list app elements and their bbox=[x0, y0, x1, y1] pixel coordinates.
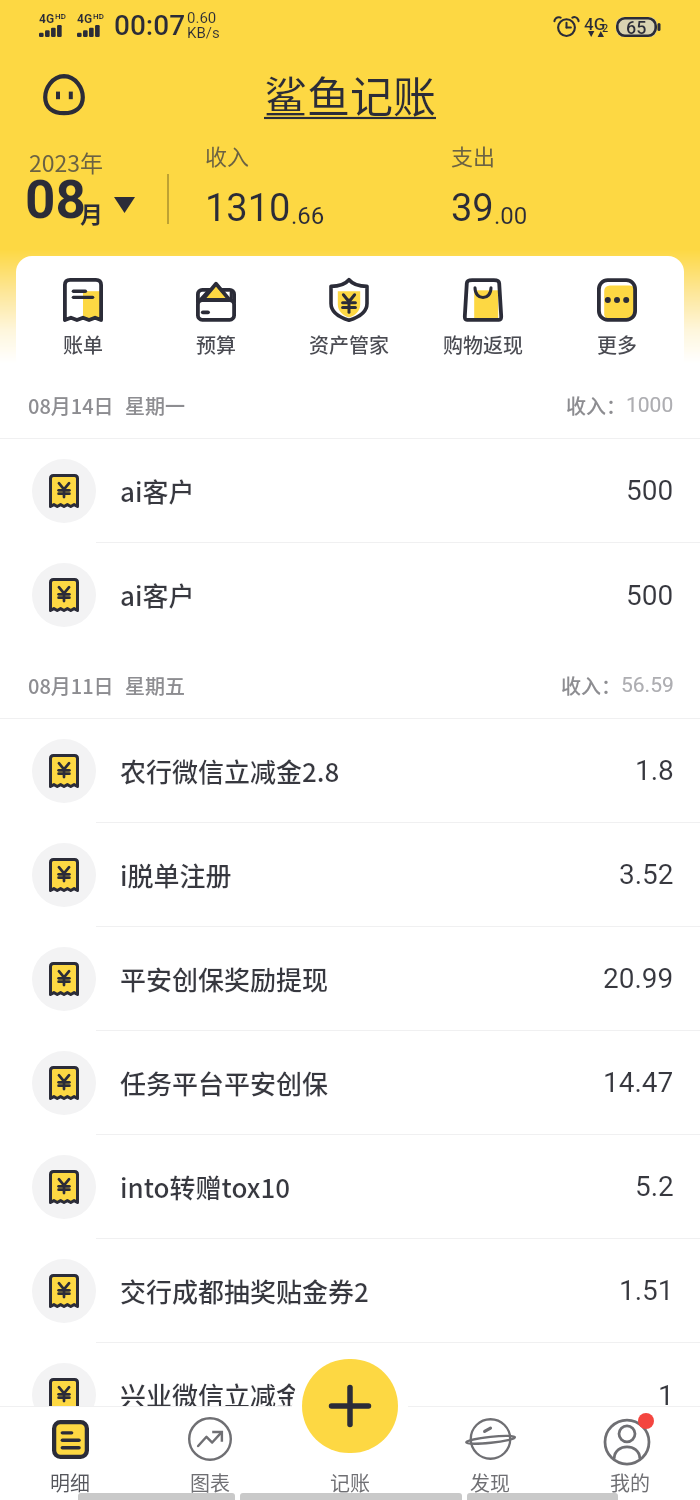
staticText: 08月11日 bbox=[28, 671, 114, 700]
staticText: 39 bbox=[451, 186, 494, 231]
staticText: 08 bbox=[25, 169, 86, 231]
staticText: .66 bbox=[291, 202, 325, 230]
staticText: 56.59 bbox=[621, 673, 674, 698]
staticText: 鲨鱼记账 bbox=[264, 63, 436, 125]
staticText: 星期一 bbox=[125, 391, 185, 420]
button[interactable]: 账单 bbox=[16, 256, 149, 374]
staticText: i脱单注册 bbox=[120, 856, 232, 894]
staticText: 4G bbox=[584, 14, 606, 34]
button[interactable]: 兴业微信立减金 bbox=[0, 1343, 700, 1447]
button[interactable]: 购物返现 bbox=[416, 256, 550, 374]
staticText: 1.8 bbox=[635, 754, 674, 787]
button[interactable]: 发现 bbox=[420, 1406, 560, 1500]
staticText: HD bbox=[93, 12, 104, 21]
staticText: 08月14日 bbox=[28, 391, 114, 420]
button[interactable]: 预算 bbox=[149, 256, 282, 374]
staticText: 图表 bbox=[190, 1468, 230, 1497]
staticText: 4G bbox=[39, 12, 55, 26]
staticText: 兴业微信立减金 bbox=[120, 1376, 303, 1414]
staticText: 发现 bbox=[470, 1468, 510, 1497]
staticText: 收入： bbox=[561, 671, 621, 700]
staticText: 明细 bbox=[50, 1468, 90, 1497]
staticText: 交行成都抽奖贴金券2 bbox=[120, 1272, 369, 1310]
staticText: .00 bbox=[494, 202, 528, 230]
staticText: into转赠tox10 bbox=[120, 1168, 291, 1206]
staticText: 收入 bbox=[205, 139, 250, 171]
staticText: 我的 bbox=[610, 1468, 650, 1497]
staticText: 月 bbox=[80, 196, 103, 229]
button[interactable]: 平安创保奖励提现 bbox=[0, 927, 700, 1031]
button[interactable]: 图表 bbox=[140, 1406, 280, 1500]
staticText: 1310 bbox=[205, 186, 291, 231]
button[interactable]: 记账 bbox=[280, 1406, 420, 1500]
button[interactable]: 明细 bbox=[0, 1406, 140, 1500]
staticText: 星期五 bbox=[125, 671, 185, 700]
button[interactable]: 2023年 bbox=[24, 140, 148, 224]
button[interactable]: 我的 bbox=[560, 1406, 700, 1500]
button[interactable]: Profile bbox=[44, 74, 84, 114]
button[interactable]: 更多 bbox=[550, 256, 684, 374]
staticText: 2023年 bbox=[29, 145, 104, 178]
staticText: ai客户 bbox=[120, 576, 195, 614]
staticText: 1.51 bbox=[619, 1274, 674, 1307]
button[interactable]: 资产管家 bbox=[282, 256, 416, 374]
staticText: 14.47 bbox=[603, 1066, 674, 1099]
staticText: 收入： bbox=[566, 391, 626, 420]
staticText: 500 bbox=[626, 579, 674, 612]
staticText: 预算 bbox=[196, 330, 236, 359]
staticText: 0.60 bbox=[187, 9, 217, 27]
button[interactable]: 任务平台平安创保 bbox=[0, 1031, 700, 1135]
staticText: 2 bbox=[602, 22, 609, 35]
staticText: 记账 bbox=[330, 1468, 370, 1497]
staticText: 购物返现 bbox=[443, 330, 523, 359]
button[interactable]: 交行成都抽奖贴金券2 bbox=[0, 1239, 700, 1343]
staticText: 1000 bbox=[626, 393, 674, 418]
staticText: 任务平台平安创保 bbox=[120, 1064, 329, 1102]
staticText: 资产管家 bbox=[309, 330, 389, 359]
button[interactable]: 农行微信立减金2.8 bbox=[0, 719, 700, 823]
button[interactable]: ai客户 bbox=[0, 543, 700, 647]
staticText: 更多 bbox=[597, 330, 637, 359]
staticText: 账单 bbox=[63, 330, 103, 359]
staticText: 农行微信立减金2.8 bbox=[120, 752, 340, 790]
staticText: 4G bbox=[77, 12, 93, 26]
staticText: 1 bbox=[658, 1379, 674, 1412]
button[interactable]: into转赠tox10 bbox=[0, 1135, 700, 1239]
staticText: 65 bbox=[626, 17, 647, 37]
staticText: 00:07 bbox=[114, 9, 186, 42]
staticText: 3.52 bbox=[619, 858, 674, 891]
staticText: HD bbox=[55, 12, 66, 21]
staticText: ai客户 bbox=[120, 472, 195, 510]
button[interactable]: i脱单注册 bbox=[0, 823, 700, 927]
staticText: 平安创保奖励提现 bbox=[120, 960, 329, 998]
button[interactable]: Add record bbox=[302, 1359, 398, 1453]
button[interactable]: ai客户 bbox=[0, 439, 700, 543]
staticText: KB/s bbox=[187, 24, 220, 42]
staticText: 20.99 bbox=[603, 962, 674, 995]
staticText: 500 bbox=[626, 474, 674, 507]
staticText: 支出 bbox=[451, 139, 496, 171]
staticText: 5.2 bbox=[635, 1170, 674, 1203]
